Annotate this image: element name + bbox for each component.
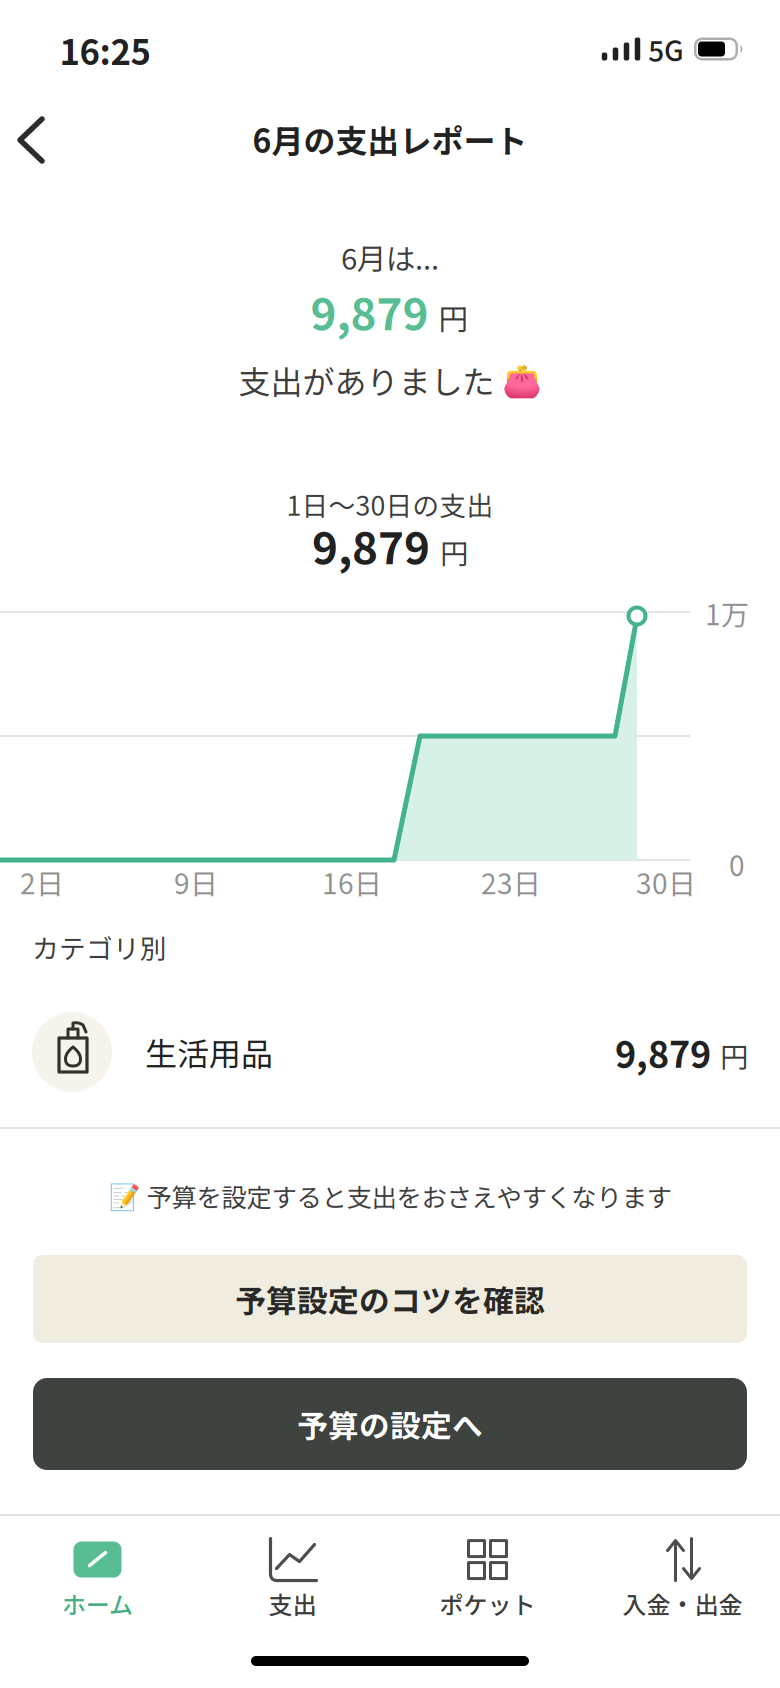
button[interactable]: 予算の設定へ xyxy=(33,1378,747,1470)
staticText: 0 xyxy=(729,844,745,884)
staticText: 16日 xyxy=(322,862,382,902)
button[interactable]: 入金・出金 xyxy=(592,1524,772,1634)
staticText: 円 xyxy=(440,532,468,572)
staticText: 2日 xyxy=(20,862,64,902)
staticText: ホーム xyxy=(62,1587,133,1620)
staticText: 1万 xyxy=(705,593,749,633)
staticText: 9日 xyxy=(174,862,218,902)
staticText: 9,879 xyxy=(615,1027,711,1077)
staticText: 16:25 xyxy=(59,25,150,74)
staticText: 1日〜30日の支出 xyxy=(286,485,493,523)
staticText: 予算設定のコツを確認 xyxy=(235,1277,545,1321)
button[interactable]: 予算設定のコツを確認 xyxy=(33,1255,747,1343)
staticText: 30日 xyxy=(636,862,696,902)
button[interactable]: ポケット xyxy=(397,1524,577,1634)
staticText: ポケット xyxy=(439,1587,535,1620)
staticText: 6月の支出レポート xyxy=(252,116,527,162)
staticText: 円 xyxy=(438,297,467,338)
staticText: 予算の設定へ xyxy=(297,1402,483,1446)
staticText: カテゴリ別 xyxy=(32,928,167,966)
staticText: 生活用品 xyxy=(145,1029,273,1075)
staticText: 入金・出金 xyxy=(622,1587,742,1620)
staticText: 9,879 xyxy=(310,280,428,342)
button[interactable]: 生活用品 xyxy=(0,996,780,1108)
staticText: 5G xyxy=(648,29,684,69)
button[interactable]: ホーム xyxy=(7,1524,187,1634)
staticText: 📝 予算を設定すると支出をおさえやすくなります xyxy=(108,1178,671,1214)
button[interactable]: Back xyxy=(9,112,65,168)
button[interactable]: 支出 xyxy=(202,1524,382,1634)
staticText: 支出 xyxy=(268,1587,316,1620)
staticText: 6月は... xyxy=(341,236,439,278)
staticText: 9,879 xyxy=(312,514,430,576)
staticText: 円 xyxy=(720,1036,748,1075)
staticText: 23日 xyxy=(481,862,541,902)
staticText: 支出がありました 👛 xyxy=(238,357,541,403)
